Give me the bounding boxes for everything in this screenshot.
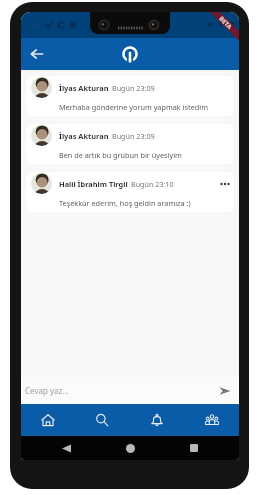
button[interactable]: Search <box>75 404 129 436</box>
staticText: Ben de artık bu grubun bir üyesiyim <box>59 150 182 160</box>
button[interactable]: More options <box>218 177 232 191</box>
staticText: Bugün 23:09 <box>112 83 155 93</box>
button[interactable]: Notifications <box>129 404 184 436</box>
button[interactable]: Recents <box>185 439 203 457</box>
staticText: Merhaba gönderine yorum yapmak istedim <box>59 102 208 112</box>
staticText: İlyas Akturan <box>59 83 109 93</box>
staticText: Cevap yaz... <box>25 385 69 396</box>
staticText: Bugün 23:10 <box>131 179 174 189</box>
staticText: Bugün 23:09 <box>112 131 155 141</box>
button[interactable]: İlyas Akturan <box>26 124 234 164</box>
staticText: BETA <box>217 15 234 31</box>
button[interactable]: Home <box>121 439 139 457</box>
staticText: 2:38 <box>24 20 39 30</box>
button[interactable]: Send <box>216 382 234 400</box>
button[interactable]: Groups <box>184 404 239 436</box>
button[interactable]: Back <box>24 41 50 67</box>
button[interactable]: İlyas Akturan <box>26 76 234 116</box>
staticText: İlyas Akturan <box>59 131 109 141</box>
staticText: Teşekkür ederim, hoş geldin aramıza :) <box>59 198 191 208</box>
button[interactable]: Back <box>57 439 75 457</box>
button[interactable]: Halil İbrahim Tirgil <box>26 172 234 212</box>
staticText: Halil İbrahim Tirgil <box>59 179 128 189</box>
button[interactable]: Home <box>21 404 75 436</box>
